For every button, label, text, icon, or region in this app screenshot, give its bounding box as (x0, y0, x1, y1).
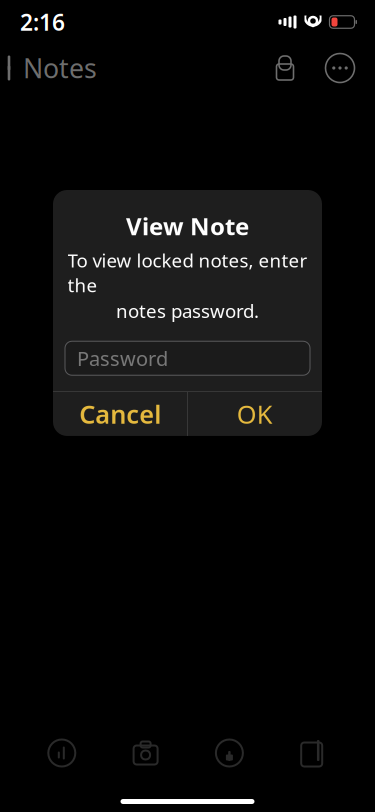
staticText: To view locked notes, enter the (67, 248, 307, 297)
staticText: View Note (126, 210, 249, 242)
staticText: Notes (23, 50, 97, 86)
button[interactable]: Markup (207, 731, 251, 775)
button[interactable]: Compose (291, 731, 335, 775)
button[interactable]: More (323, 51, 357, 85)
button[interactable]: View Note (111, 317, 263, 366)
staticText: View Note (121, 323, 253, 360)
button[interactable]: Cancel (53, 392, 187, 436)
staticText: notes password. (116, 298, 259, 323)
staticText: This note is locked. (55, 258, 320, 297)
button[interactable]: Notes (0, 42, 97, 94)
staticText: 2:16 (20, 7, 65, 37)
button[interactable]: Checklist (40, 731, 84, 775)
button[interactable]: Lock Note (265, 49, 305, 87)
staticText: Password (77, 345, 168, 372)
staticText: Cancel (79, 397, 161, 431)
staticText: OK (237, 397, 273, 431)
button[interactable]: Camera (124, 731, 168, 775)
button[interactable]: OK (188, 392, 322, 436)
